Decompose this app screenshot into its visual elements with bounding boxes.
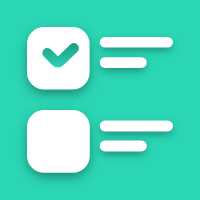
button[interactable]: Completed task [27, 27, 89, 89]
button[interactable]: Pending task [27, 110, 90, 173]
